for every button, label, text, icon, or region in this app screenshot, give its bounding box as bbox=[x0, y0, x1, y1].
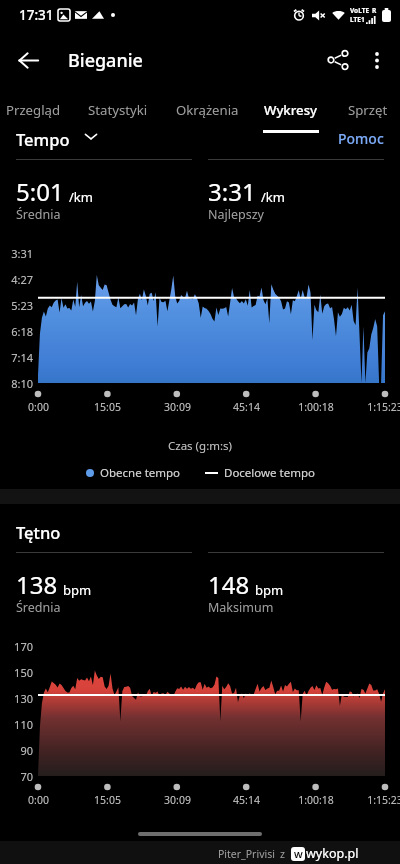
button[interactable]: Back bbox=[4, 36, 52, 84]
staticText: 45:14 bbox=[233, 793, 260, 807]
button[interactable]: Statystyki bbox=[78, 86, 158, 133]
staticText: 3:31 bbox=[208, 175, 256, 208]
staticText: Maksimum bbox=[208, 599, 274, 616]
staticText: 110 bbox=[14, 717, 33, 732]
staticText: 1:00:18 bbox=[298, 793, 334, 807]
staticText: 8:10 bbox=[11, 376, 33, 391]
staticText: Średnia bbox=[16, 599, 61, 616]
staticText: 1:15:23 bbox=[367, 400, 400, 414]
staticText: 15:05 bbox=[94, 400, 121, 414]
staticText: 17:31 bbox=[19, 6, 54, 24]
staticText: 15:05 bbox=[94, 793, 121, 807]
staticText: 170 bbox=[14, 639, 33, 654]
staticText: VoLTE bbox=[350, 6, 370, 15]
staticText: 30:09 bbox=[164, 793, 191, 807]
button[interactable]: Sprzęt bbox=[342, 86, 394, 133]
button[interactable]: Pomoc bbox=[338, 133, 384, 148]
staticText: Najlepszy bbox=[208, 206, 264, 223]
staticText: 0:00 bbox=[28, 793, 49, 807]
staticText: 138 bbox=[16, 568, 58, 601]
staticText: Okrążenia bbox=[176, 101, 239, 119]
staticText: R bbox=[372, 6, 377, 15]
staticText: Docelowe tempo bbox=[224, 465, 315, 481]
staticText: Czas (g:m:s) bbox=[168, 438, 233, 454]
staticText: Średnia bbox=[16, 206, 61, 223]
button[interactable]: Share bbox=[314, 36, 362, 84]
button[interactable]: More options bbox=[353, 36, 400, 84]
staticText: 150 bbox=[14, 665, 33, 680]
button[interactable]: Okrążenia bbox=[167, 86, 247, 133]
staticText: Bieganie bbox=[68, 48, 143, 73]
staticText: 90 bbox=[20, 743, 33, 758]
staticText: z bbox=[280, 847, 285, 861]
staticText: Pomoc bbox=[338, 133, 384, 148]
staticText: 5:23 bbox=[11, 298, 33, 313]
staticText: 6:18 bbox=[11, 324, 33, 339]
staticText: 5:01 bbox=[16, 175, 64, 208]
staticText: /km bbox=[261, 188, 285, 206]
staticText: bpm bbox=[63, 581, 92, 599]
button[interactable]: Przegląd bbox=[0, 86, 67, 133]
staticText: 0:00 bbox=[28, 400, 49, 414]
staticText: 148 bbox=[208, 568, 250, 601]
staticText: Przegląd bbox=[6, 101, 61, 119]
staticText: Sprzęt bbox=[348, 101, 388, 119]
staticText: Piter_Privisi bbox=[218, 847, 275, 861]
staticText: Statystyki bbox=[88, 101, 148, 119]
button[interactable]: Change metric bbox=[81, 133, 101, 146]
staticText: 7:14 bbox=[11, 350, 33, 365]
staticText: 130 bbox=[14, 691, 33, 706]
staticText: 1:15:23 bbox=[367, 793, 400, 807]
staticText: 3:31 bbox=[11, 246, 33, 261]
staticText: Obecne tempo bbox=[100, 465, 181, 481]
staticText: LTE1 bbox=[350, 15, 365, 24]
staticText: /km bbox=[69, 188, 93, 206]
staticText: W bbox=[294, 848, 303, 860]
staticText: 70 bbox=[20, 769, 33, 784]
staticText: Wykresy bbox=[264, 101, 317, 119]
staticText: 4:27 bbox=[11, 272, 33, 287]
staticText: 45:14 bbox=[233, 400, 260, 414]
staticText: 30:09 bbox=[164, 400, 191, 414]
staticText: 1:00:18 bbox=[298, 400, 334, 414]
button[interactable]: Wykresy bbox=[257, 86, 324, 133]
staticText: Tętno bbox=[16, 521, 61, 543]
staticText: wykop.pl bbox=[306, 845, 359, 862]
staticText: bpm bbox=[255, 581, 284, 599]
staticText: Tempo bbox=[16, 133, 70, 150]
